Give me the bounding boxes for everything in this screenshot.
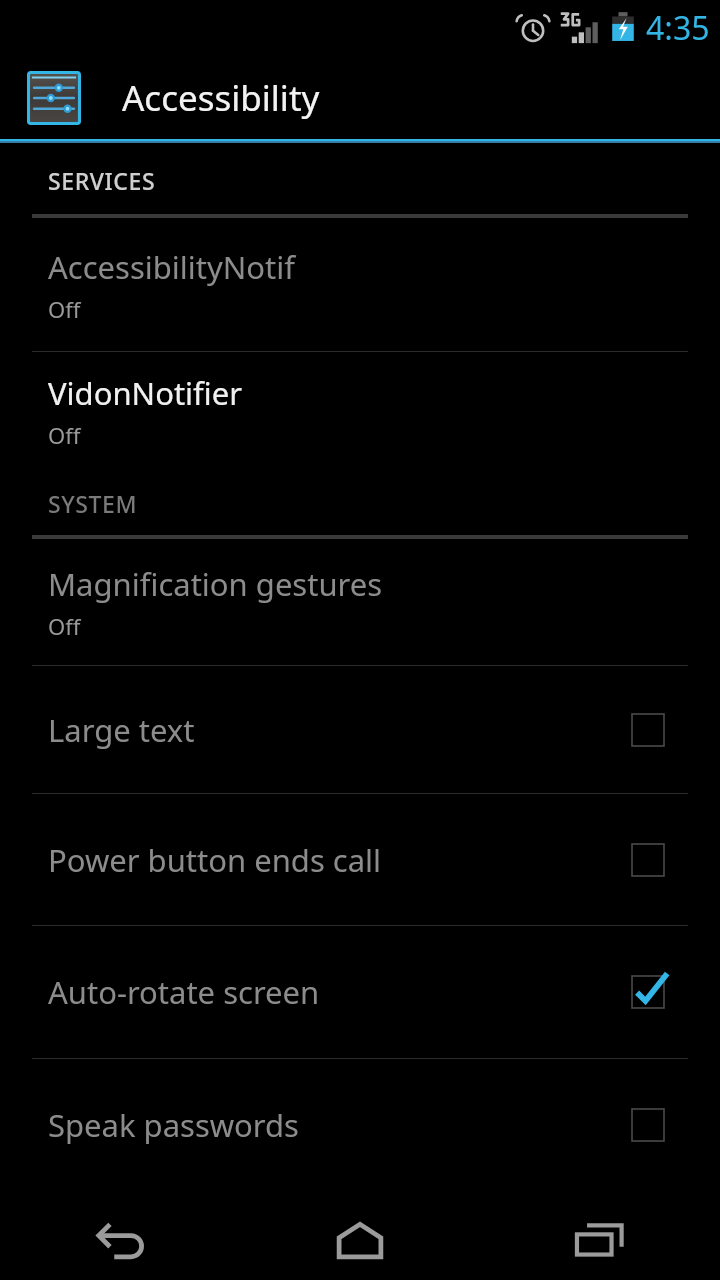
button[interactable]: Speak passwords — [0, 1059, 720, 1191]
button[interactable]: VidonNotifier — [0, 352, 720, 470]
other: Accessibility settings icon — [26, 70, 82, 126]
button[interactable]: Recent apps — [480, 1200, 720, 1280]
button[interactable]: Large text — [0, 666, 720, 793]
button[interactable]: Magnification gestures — [0, 539, 720, 665]
button[interactable]: Auto-rotate screen — [0, 926, 720, 1058]
staticText: Accessibility — [122, 74, 320, 122]
button[interactable]: AccessibilityNotif — [0, 218, 720, 351]
staticText: SYSTEM — [48, 488, 138, 519]
staticText: Speak passwords — [48, 1104, 628, 1146]
staticText: 4:35 — [646, 6, 710, 50]
staticText: Large text — [48, 709, 628, 751]
staticText: VidonNotifier — [48, 372, 243, 414]
staticText: Off — [48, 294, 81, 324]
button[interactable]: Power button ends call — [0, 794, 720, 925]
staticText: Off — [48, 420, 81, 450]
staticText: Off — [48, 611, 81, 641]
button[interactable]: Accessibility settings icon — [0, 56, 720, 139]
staticText: Auto-rotate screen — [48, 971, 628, 1013]
staticText: SERVICES — [48, 165, 156, 196]
staticText: Magnification gestures — [48, 563, 383, 605]
staticText: Power button ends call — [48, 839, 628, 881]
button[interactable]: Home — [240, 1200, 480, 1280]
button[interactable]: Back — [0, 1200, 240, 1280]
staticText: AccessibilityNotif — [48, 246, 295, 288]
